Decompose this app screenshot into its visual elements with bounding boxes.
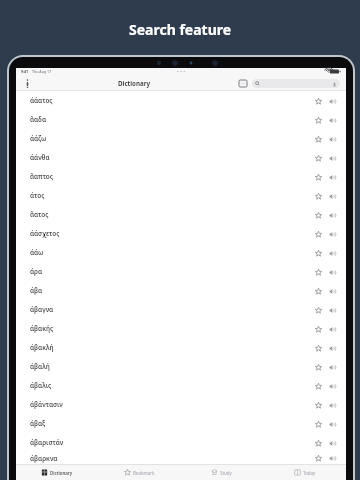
button[interactable]: Play pronunciation	[326, 228, 338, 240]
button[interactable]: άάατος	[16, 91, 346, 110]
button[interactable]: Bookmark	[312, 209, 324, 221]
button[interactable]: άβαριστάν	[16, 433, 346, 452]
staticText: ᾶατος	[30, 210, 49, 219]
staticText: Thu Aug 17	[32, 69, 52, 74]
button[interactable]: Play pronunciation	[326, 171, 338, 183]
button[interactable]: Play pronunciation	[326, 95, 338, 107]
button[interactable]: Bookmark	[312, 152, 324, 164]
staticText: Dictionary	[50, 470, 73, 476]
staticText: άβαλή	[30, 362, 50, 371]
button[interactable]: Bookmark	[312, 361, 324, 373]
button[interactable]: Play pronunciation	[326, 361, 338, 373]
staticText: άρα	[30, 267, 43, 276]
button[interactable]: άτος	[16, 186, 346, 205]
button[interactable]: Study	[180, 465, 263, 480]
button[interactable]: άβακής	[16, 319, 346, 338]
button[interactable]: Bookmark	[312, 228, 324, 240]
button[interactable]: Play pronunciation	[326, 190, 338, 202]
button[interactable]: άβαγνα	[16, 300, 346, 319]
button[interactable]: Play pronunciation	[326, 418, 338, 430]
staticText: άάω	[30, 248, 44, 257]
button[interactable]: άάω	[16, 243, 346, 262]
staticText: άάατος	[30, 96, 53, 105]
button[interactable]: Voice search	[252, 79, 340, 88]
staticText: άβαλις	[30, 381, 52, 390]
staticText: Bookmark	[133, 470, 155, 476]
staticText: 9:41	[21, 69, 29, 74]
staticText: άβαγνα	[30, 305, 54, 314]
staticText: άβα	[30, 286, 43, 295]
button[interactable]: Bookmark	[312, 171, 324, 183]
button[interactable]: Bookmark	[312, 190, 324, 202]
button[interactable]: Bookmark	[312, 437, 324, 449]
button[interactable]: ᾶαπτος	[16, 167, 346, 186]
staticText: άβαξ	[30, 419, 46, 428]
button[interactable]: Bookmark	[312, 452, 324, 464]
button[interactable]: Bookmark	[312, 323, 324, 335]
button[interactable]: Play pronunciation	[326, 304, 338, 316]
button[interactable]: Play pronunciation	[326, 437, 338, 449]
staticText: άβαριστάν	[30, 438, 64, 447]
staticText: Search feature	[129, 20, 232, 39]
staticText: άάσχετος	[30, 229, 60, 238]
button[interactable]: Play pronunciation	[326, 209, 338, 221]
staticText: άάζω	[30, 134, 47, 143]
button[interactable]: άβαλις	[16, 376, 346, 395]
button[interactable]: Bookmark	[98, 465, 180, 480]
button[interactable]: Play pronunciation	[326, 133, 338, 145]
button[interactable]: άβα	[16, 281, 346, 300]
staticText: άβαρκνα	[30, 454, 58, 463]
button[interactable]: Play pronunciation	[326, 380, 338, 392]
staticText: άβακλή	[30, 343, 54, 352]
button[interactable]: Play pronunciation	[326, 266, 338, 278]
button[interactable]: Voice search	[331, 81, 337, 87]
button[interactable]: Bookmark	[312, 133, 324, 145]
button[interactable]: άβάντασιν	[16, 395, 346, 414]
button[interactable]: Play pronunciation	[326, 323, 338, 335]
button[interactable]: Bookmark	[312, 266, 324, 278]
button[interactable]: Today	[263, 465, 346, 480]
staticText: άβάντασιν	[30, 400, 63, 409]
staticText: Dictionary	[118, 79, 151, 87]
button[interactable]: Play pronunciation	[326, 285, 338, 297]
staticText: Today	[303, 470, 316, 476]
staticText: άάνθα	[30, 153, 50, 162]
staticText: άβακής	[30, 324, 54, 333]
button[interactable]: άβαξ	[16, 414, 346, 433]
button[interactable]: Bookmark	[312, 247, 324, 259]
button[interactable]: Play pronunciation	[326, 247, 338, 259]
button[interactable]: άβαλή	[16, 357, 346, 376]
button[interactable]: Play pronunciation	[326, 342, 338, 354]
button[interactable]: Bookmark	[312, 285, 324, 297]
button[interactable]: Bookmark	[312, 342, 324, 354]
button[interactable]: άάσχετος	[16, 224, 346, 243]
button[interactable]: Menu	[22, 78, 33, 89]
button[interactable]: άάνθα	[16, 148, 346, 167]
button[interactable]: Play pronunciation	[326, 399, 338, 411]
button[interactable]: Play pronunciation	[326, 452, 338, 464]
button[interactable]: Play pronunciation	[326, 114, 338, 126]
button[interactable]: Bookmark	[312, 418, 324, 430]
button[interactable]: άάζω	[16, 129, 346, 148]
button[interactable]: άβακλή	[16, 338, 346, 357]
button[interactable]: ᾶατος	[16, 205, 346, 224]
button[interactable]: άβαρκνα	[16, 452, 346, 464]
button[interactable]: Keyboard	[237, 78, 248, 89]
button[interactable]: Bookmark	[312, 304, 324, 316]
button[interactable]: Bookmark	[312, 399, 324, 411]
staticText: άτος	[30, 191, 45, 200]
button[interactable]: Dictionary	[16, 465, 98, 480]
staticText: ᾶαδα	[30, 115, 47, 124]
button[interactable]: άρα	[16, 262, 346, 281]
staticText: Study	[220, 470, 232, 476]
staticText: ᾶαπτος	[30, 172, 54, 181]
button[interactable]: Bookmark	[312, 380, 324, 392]
button[interactable]: ᾶαδα	[16, 110, 346, 129]
button[interactable]: Bookmark	[312, 95, 324, 107]
button[interactable]: Play pronunciation	[326, 152, 338, 164]
button[interactable]: Bookmark	[312, 114, 324, 126]
